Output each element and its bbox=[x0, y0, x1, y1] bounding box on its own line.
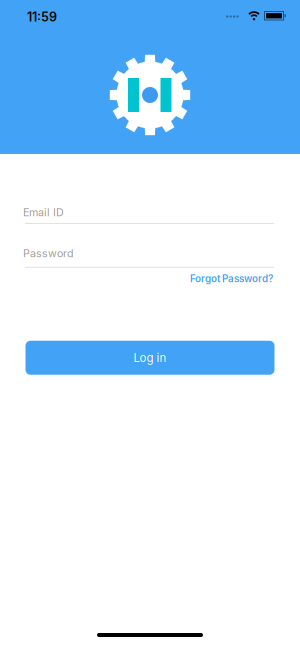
staticText: Forgot Password? bbox=[190, 273, 273, 285]
textField[interactable]: Email ID bbox=[23, 206, 272, 219]
staticText: Log in bbox=[133, 351, 166, 365]
button[interactable]: Log in bbox=[25, 341, 274, 375]
staticText: 11:59 bbox=[27, 9, 57, 25]
button[interactable]: Forgot Password? bbox=[190, 273, 273, 285]
secureTextField[interactable]: Password bbox=[23, 247, 272, 260]
staticText: Password bbox=[23, 247, 74, 260]
staticText: Email ID bbox=[23, 206, 64, 219]
